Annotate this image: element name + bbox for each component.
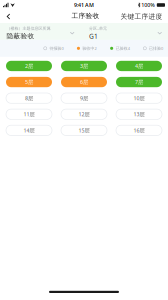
staticText: 15层 (78, 127, 89, 134)
staticText: （楼栋）主题信息区所属 (6, 26, 50, 31)
staticText: 关键工序进度 (120, 12, 162, 21)
button[interactable]: 5层 (6, 77, 52, 87)
button[interactable]: 9层 (61, 93, 107, 103)
staticText: 9层 (80, 95, 88, 102)
staticText: 11层 (23, 111, 34, 118)
button[interactable]: 11层 (6, 109, 52, 119)
staticText: 100% (141, 1, 155, 9)
staticText: 4层 (135, 62, 143, 69)
button[interactable]: 13层 (116, 109, 162, 119)
staticText: 12层 (78, 111, 89, 118)
staticText: 7层 (135, 78, 143, 86)
button[interactable]: 6层 (61, 77, 107, 87)
button[interactable]: 8层 (6, 93, 52, 103)
staticText: 待报验0 (49, 46, 63, 51)
staticText: 10层 (133, 95, 144, 102)
staticText: 2层 (25, 62, 33, 69)
button[interactable]: 10层 (116, 93, 162, 103)
staticText: 9:41 AM (74, 1, 94, 9)
staticText: 验收中2 (83, 46, 97, 51)
staticText: 6层 (80, 78, 88, 86)
staticText: 3层 (80, 62, 88, 69)
staticText: 5层 (25, 78, 33, 86)
button[interactable]: 返回 (3, 10, 14, 23)
button[interactable]: 7层 (116, 77, 162, 87)
staticText: 分区--单元 (89, 25, 107, 31)
staticText: 隐蔽验收 (6, 32, 34, 40)
button[interactable]: 3层 (61, 61, 107, 71)
button[interactable]: 15层 (61, 125, 107, 135)
button[interactable]: （楼栋）主题信息区所属 (6, 26, 74, 40)
button[interactable]: 14层 (6, 125, 52, 135)
button[interactable]: 12层 (61, 109, 107, 119)
button[interactable]: 4层 (116, 61, 162, 71)
staticText: G1 (89, 32, 98, 41)
staticText: 工序验收 (71, 12, 99, 20)
staticText: 14层 (23, 127, 34, 134)
staticText: 已排验0 (149, 46, 163, 51)
staticText: 8层 (25, 95, 33, 102)
button[interactable]: 分区--单元 (89, 25, 162, 41)
button[interactable]: 2层 (6, 61, 52, 71)
button[interactable]: 关键工序进度 (120, 10, 162, 23)
staticText: 已验收4 (116, 46, 130, 51)
staticText: 16层 (133, 127, 144, 134)
staticText: 13层 (133, 111, 144, 118)
button[interactable]: 16层 (116, 125, 162, 135)
